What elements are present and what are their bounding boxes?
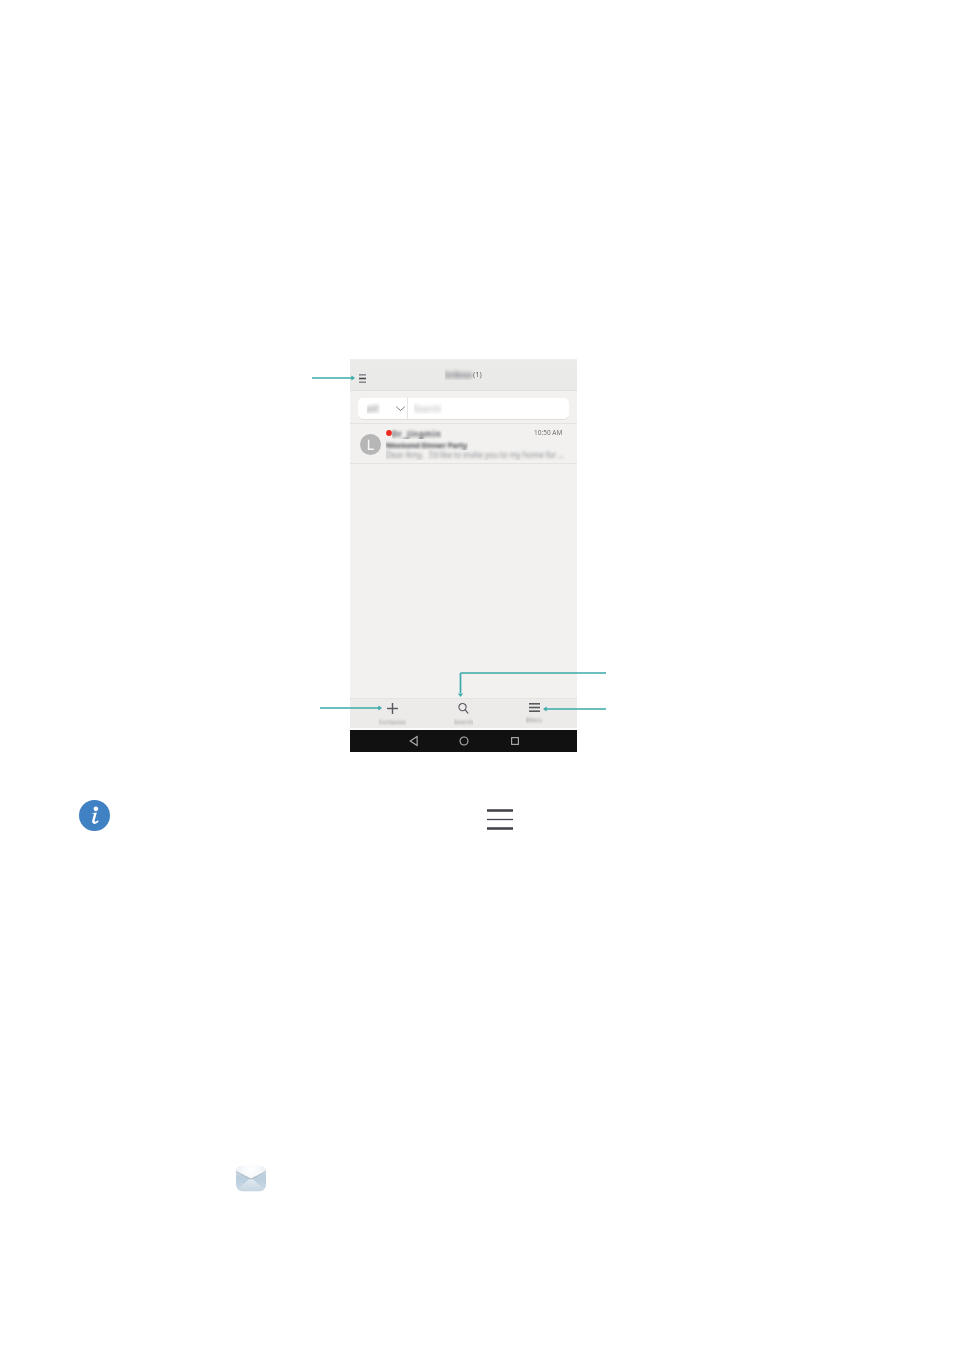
button[interactable]: Dr_Jingmin [350, 424, 577, 463]
other: Email app icon [236, 1164, 266, 1193]
staticText: (1) [473, 369, 482, 379]
button[interactable]: All [358, 398, 569, 419]
staticText: 10:50 AM [534, 428, 563, 437]
staticText: Search [414, 403, 442, 414]
staticText: Inbox [445, 368, 473, 380]
staticText: Compose [379, 718, 406, 726]
staticText: Menu [526, 716, 543, 724]
staticText: Dr_Jingmin [392, 428, 442, 439]
staticText: Weekend Dinner Party [386, 440, 468, 450]
button[interactable]: Compose [357, 699, 428, 726]
other: Home [458, 735, 470, 747]
staticText: All [367, 403, 380, 414]
staticText: Dear Amy, I'd like to invite you to my h… [386, 449, 565, 460]
other: Recent apps [509, 735, 521, 747]
button[interactable]: Search [428, 699, 499, 726]
other: Back [408, 735, 420, 747]
staticText: Search [454, 718, 473, 726]
button[interactable]: Menu [499, 699, 570, 724]
button[interactable]: Information [79, 800, 110, 831]
button[interactable]: Navigation drawer [353, 366, 369, 383]
button[interactable]: Menu [487, 806, 513, 833]
